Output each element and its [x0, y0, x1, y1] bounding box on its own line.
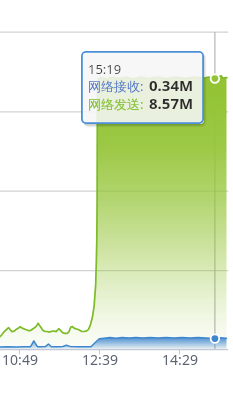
button[interactable]: 15:19 [81, 51, 204, 124]
staticText: 15:19 [88, 60, 122, 78]
staticText: 网络发送: [88, 95, 144, 113]
staticText: 12:39 [70, 350, 130, 408]
staticText: 14:29 [150, 350, 210, 408]
staticText: 0.34M [149, 75, 194, 95]
staticText: 8.57M [149, 93, 194, 113]
staticText: 10:49 [0, 350, 50, 408]
staticText: 网络接收: [88, 77, 144, 95]
